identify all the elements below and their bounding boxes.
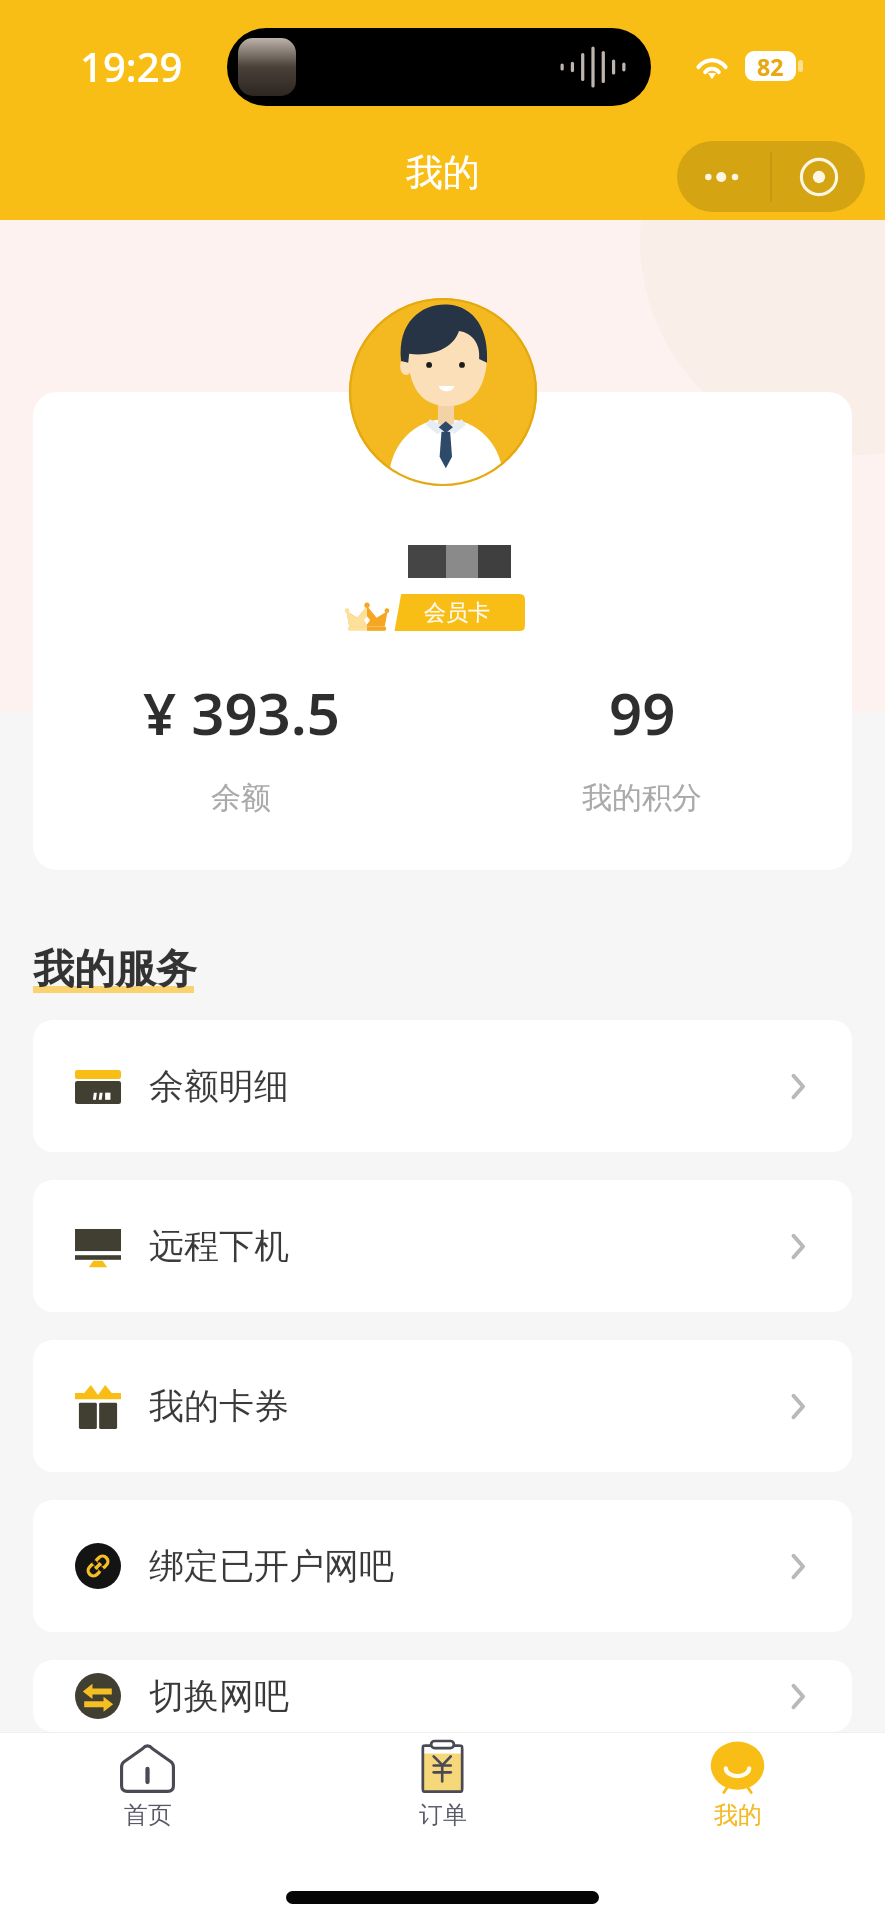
staticText: ¥ 393.5 bbox=[143, 673, 340, 752]
staticText: 切换网吧 bbox=[149, 1674, 289, 1718]
button[interactable]: 我的卡券 bbox=[33, 1340, 852, 1472]
staticText: 我的积分 bbox=[582, 779, 702, 817]
staticText: 订单 bbox=[419, 1800, 467, 1830]
staticText: 我的卡券 bbox=[149, 1384, 289, 1428]
staticText: 我的 bbox=[714, 1800, 762, 1830]
button[interactable]: 远程下机 bbox=[33, 1180, 852, 1312]
button[interactable]: More options bbox=[677, 141, 865, 212]
button[interactable]: 订单 bbox=[295, 1739, 590, 1835]
button[interactable]: 余额明细 bbox=[33, 1020, 852, 1152]
button[interactable]: 切换网吧 bbox=[33, 1660, 852, 1732]
staticText: 绑定已开户网吧 bbox=[149, 1544, 394, 1588]
button[interactable]: 首页 bbox=[0, 1739, 295, 1835]
staticText: 我的 bbox=[406, 149, 480, 196]
staticText: 余额明细 bbox=[149, 1064, 289, 1108]
staticText: 我的服务 bbox=[33, 944, 197, 996]
staticText: 远程下机 bbox=[149, 1224, 289, 1268]
button[interactable]: 我的 bbox=[590, 1739, 885, 1835]
staticText: 19:29 bbox=[80, 39, 183, 93]
staticText: 首页 bbox=[124, 1800, 172, 1830]
staticText: 会员卡 bbox=[424, 599, 490, 627]
staticText: 82 bbox=[757, 51, 784, 81]
staticText: 余额 bbox=[211, 779, 271, 817]
button[interactable]: 绑定已开户网吧 bbox=[33, 1500, 852, 1632]
staticText: 99 bbox=[609, 673, 676, 752]
